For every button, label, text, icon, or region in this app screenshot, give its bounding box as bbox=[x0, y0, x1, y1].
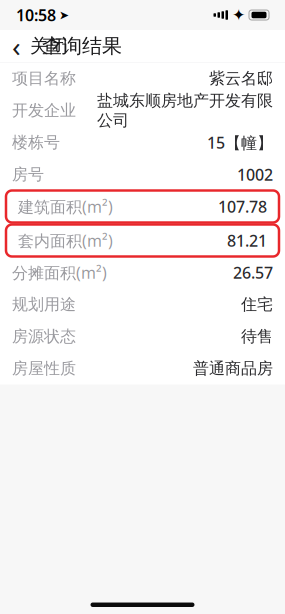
staticText: 盐城东顺房地产开发有限公司 bbox=[97, 91, 273, 130]
staticText: 开发企业 bbox=[12, 101, 76, 120]
staticText: 1002 bbox=[237, 164, 273, 185]
staticText: 住宅 bbox=[241, 295, 273, 314]
staticText: 套内面积(m²) bbox=[18, 230, 113, 251]
staticText: 81.21 bbox=[227, 230, 267, 251]
staticText: 项目名称 bbox=[12, 69, 76, 88]
staticText: 查询结果 bbox=[42, 34, 122, 58]
staticText: ‹ bbox=[12, 27, 21, 65]
staticText: 分摊面积(m²) bbox=[12, 262, 107, 283]
staticText: 规划用途 bbox=[12, 295, 76, 314]
staticText: 26.57 bbox=[233, 262, 273, 283]
staticText: 普通商品房 bbox=[193, 359, 273, 378]
staticText: 房号 bbox=[12, 165, 44, 184]
staticText: 紫云名邸 bbox=[209, 69, 273, 88]
staticText: 10:58 bbox=[16, 4, 56, 26]
staticText: 建筑面积(m²) bbox=[18, 196, 113, 217]
staticText: 关闭 bbox=[30, 34, 68, 57]
staticText: 楼栋号 bbox=[12, 133, 60, 152]
staticText: ✦ bbox=[232, 6, 245, 24]
button[interactable]: ‹ bbox=[0, 30, 80, 62]
staticText: 15【幢】 bbox=[207, 132, 273, 153]
staticText: 107.78 bbox=[218, 196, 267, 217]
staticText: 房屋性质 bbox=[12, 359, 76, 378]
staticText: 房源状态 bbox=[12, 327, 76, 346]
staticText: 待售 bbox=[241, 327, 273, 346]
staticText: ➤ bbox=[59, 8, 69, 22]
